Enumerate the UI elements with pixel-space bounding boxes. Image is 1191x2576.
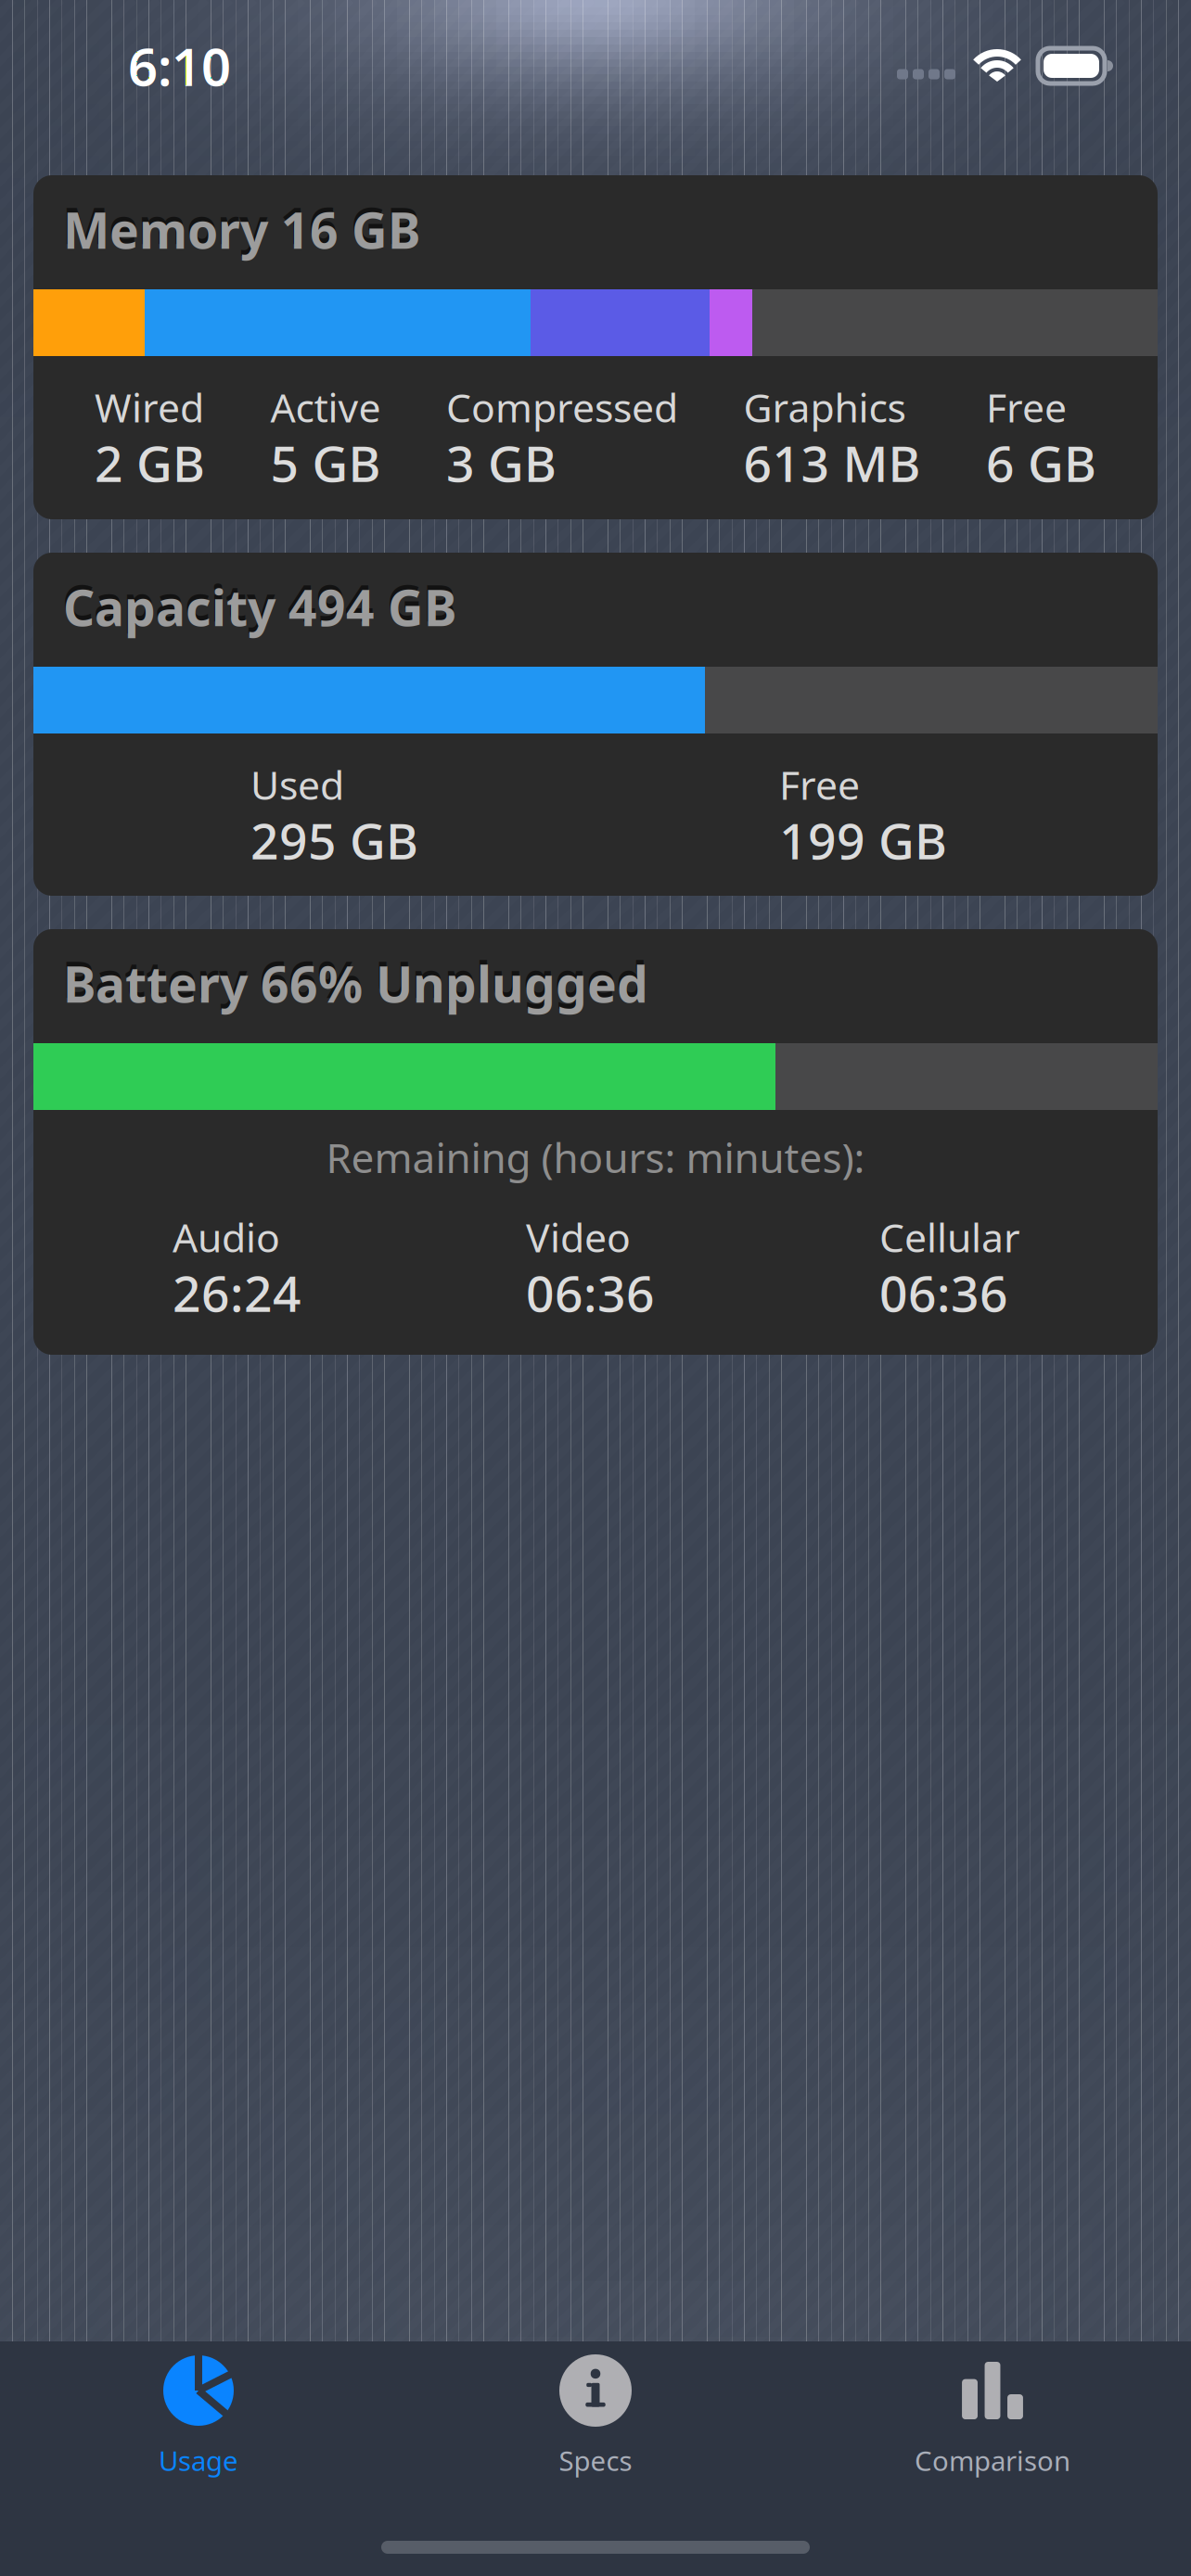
staticText: 6:10 <box>128 31 231 100</box>
button[interactable]: Specs <box>397 2341 794 2499</box>
staticText: Remaining (hours: minutes): <box>326 1130 865 1184</box>
staticText: Memory 16 GB <box>62 192 419 258</box>
staticText: 295 GB <box>250 807 418 873</box>
staticText: Free <box>779 758 860 811</box>
staticText: 2 GB <box>95 430 205 496</box>
staticText: Capacity 494 GB <box>63 574 456 640</box>
staticText: Usage <box>159 2442 238 2479</box>
button[interactable]: Comparison <box>794 2341 1191 2499</box>
staticText: Compressed <box>446 381 678 433</box>
staticText: Wired <box>95 381 204 433</box>
staticText: Battery 66% Unplugged <box>62 946 647 1012</box>
staticText: Video <box>526 1211 631 1263</box>
staticText: 613 MB <box>743 430 921 496</box>
staticText: Free <box>986 381 1067 433</box>
staticText: 06:36 <box>526 1260 655 1325</box>
staticText: Memory 16 GB <box>63 197 420 262</box>
staticText: Graphics <box>743 381 906 433</box>
staticText: Capacity 494 GB <box>62 569 455 635</box>
staticText: 3 GB <box>446 430 557 496</box>
button[interactable]: Usage <box>0 2341 397 2499</box>
staticText: 199 GB <box>779 807 947 873</box>
staticText: Cellular <box>879 1211 1020 1263</box>
staticText: Active <box>270 381 381 433</box>
staticText: Used <box>250 758 344 811</box>
staticText: Battery 66% Unplugged <box>63 951 648 1016</box>
staticText: 06:36 <box>879 1260 1008 1325</box>
staticText: 26:24 <box>173 1260 301 1325</box>
staticText: 5 GB <box>270 430 381 496</box>
staticText: 6 GB <box>986 430 1096 496</box>
staticText: Audio <box>173 1211 280 1263</box>
staticText: Specs <box>559 2442 632 2479</box>
staticText: Comparison <box>915 2442 1070 2479</box>
